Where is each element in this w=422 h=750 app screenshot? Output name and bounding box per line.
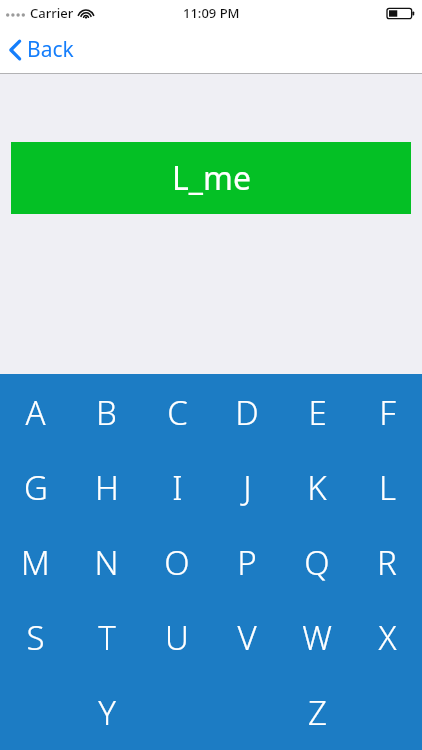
- staticText: J: [243, 465, 252, 510]
- staticText: Carrier: [30, 4, 74, 22]
- button[interactable]: B: [71, 374, 142, 450]
- staticText: Back: [27, 35, 74, 64]
- button[interactable]: H: [71, 450, 142, 525]
- button[interactable]: L: [352, 450, 422, 525]
- button[interactable]: Back: [7, 31, 76, 68]
- staticText: U: [165, 615, 189, 660]
- button[interactable]: P: [212, 525, 282, 600]
- button[interactable]: X: [352, 600, 422, 675]
- staticText: V: [237, 615, 257, 660]
- button[interactable]: T: [71, 600, 142, 675]
- button[interactable]: W: [282, 600, 352, 675]
- staticText: Y: [98, 690, 116, 735]
- staticText: K: [307, 465, 327, 510]
- staticText: P: [237, 540, 257, 585]
- button[interactable]: Q: [282, 525, 352, 600]
- staticText: B: [96, 390, 117, 435]
- staticText: N: [94, 540, 119, 585]
- button[interactable]: L_me: [11, 142, 411, 214]
- staticText: Q: [304, 540, 330, 585]
- staticText: Z: [308, 690, 327, 735]
- button[interactable]: J: [212, 450, 282, 525]
- button[interactable]: N: [71, 525, 142, 600]
- staticText: F: [379, 390, 396, 435]
- button[interactable]: S: [0, 600, 71, 675]
- button[interactable]: U: [142, 600, 212, 675]
- staticText: S: [26, 615, 45, 660]
- button[interactable]: F: [352, 374, 422, 450]
- button[interactable]: A: [0, 374, 71, 450]
- staticText: H: [95, 465, 119, 510]
- button[interactable]: O: [142, 525, 212, 600]
- staticText: G: [24, 465, 48, 510]
- staticText: R: [377, 540, 397, 585]
- button[interactable]: M: [0, 525, 71, 600]
- staticText: L: [379, 465, 396, 510]
- staticText: M: [21, 540, 50, 585]
- staticText: A: [25, 390, 46, 435]
- button[interactable]: Y: [71, 675, 142, 750]
- button[interactable]: R: [352, 525, 422, 600]
- button[interactable]: D: [212, 374, 282, 450]
- staticText: W: [302, 615, 332, 660]
- staticText: D: [235, 390, 259, 435]
- staticText: L_me: [172, 156, 251, 200]
- staticText: T: [98, 615, 116, 660]
- button[interactable]: I: [142, 450, 212, 525]
- button[interactable]: E: [282, 374, 352, 450]
- button[interactable]: V: [212, 600, 282, 675]
- staticText: I: [172, 465, 183, 510]
- staticText: 11:09 PM: [183, 4, 240, 22]
- button[interactable]: K: [282, 450, 352, 525]
- button[interactable]: C: [142, 374, 212, 450]
- button[interactable]: G: [0, 450, 71, 525]
- staticText: O: [164, 540, 190, 585]
- staticText: E: [308, 390, 327, 435]
- staticText: X: [378, 615, 397, 660]
- button[interactable]: Z: [282, 675, 352, 750]
- staticText: C: [167, 390, 188, 435]
